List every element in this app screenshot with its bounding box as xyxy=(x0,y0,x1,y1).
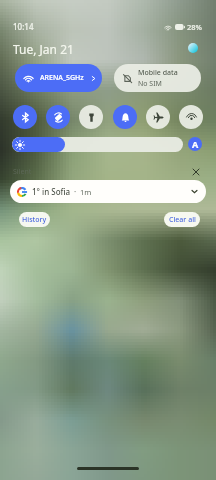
staticText: 10:14 xyxy=(13,21,34,32)
button[interactable]: Brightness xyxy=(12,137,183,152)
button[interactable]: Auto brightness xyxy=(188,137,202,151)
staticText: A xyxy=(192,138,199,150)
button[interactable]: Bluetooth xyxy=(13,105,37,129)
staticText: ARENA_5GHz xyxy=(40,73,84,83)
staticText: Clear all xyxy=(169,215,196,225)
staticText: Tue, Jan 21 xyxy=(13,41,74,57)
button[interactable]: Clear all notifications xyxy=(190,166,202,178)
button[interactable]: History xyxy=(19,212,50,227)
button[interactable]: Auto rotate xyxy=(46,105,70,129)
button[interactable]: Clear all xyxy=(164,212,200,227)
staticText: No SIM xyxy=(138,79,162,89)
staticText: 1° in Sofia xyxy=(32,186,71,197)
button[interactable]: Mobile data xyxy=(114,64,201,92)
button[interactable]: ARENA_5GHz xyxy=(15,64,102,92)
staticText: · xyxy=(74,186,77,197)
staticText: Silent xyxy=(13,167,32,177)
button[interactable]: Airplane mode xyxy=(146,105,170,129)
staticText: 28% xyxy=(187,22,202,32)
button[interactable]: Account xyxy=(188,43,198,53)
staticText: History xyxy=(22,215,47,225)
staticText: Mobile data xyxy=(138,68,178,78)
button[interactable]: Flashlight xyxy=(79,105,103,129)
button[interactable]: Notifications xyxy=(113,105,137,129)
staticText: 1m xyxy=(80,187,92,197)
button[interactable]: Hotspot xyxy=(179,105,203,129)
button[interactable]: 1° in Sofia xyxy=(10,180,206,203)
